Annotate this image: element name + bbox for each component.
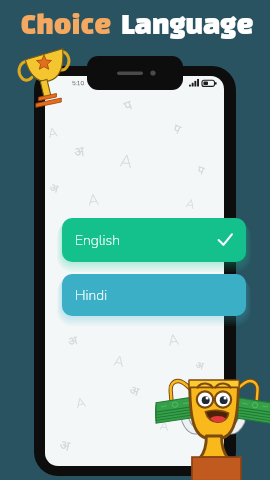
staticText: 5:10 [72,79,85,87]
staticText: प [198,391,209,408]
staticText: अ [73,141,85,161]
staticText: A [46,123,60,143]
staticText: A [112,351,126,372]
staticText: प [121,95,135,115]
staticText: अ [58,435,72,455]
staticText: Choice [21,8,112,40]
staticText: A [184,195,197,213]
button[interactable]: Hindi [62,274,246,316]
staticText: A [87,189,100,210]
staticText: अ [48,179,61,196]
staticText: अ [195,357,205,373]
staticText: प [171,119,184,137]
staticText: A [74,393,88,413]
staticText: अ [66,331,80,349]
staticText: English [75,231,120,250]
staticText: Language [121,8,254,40]
other: Selected [217,232,233,248]
staticText: A [118,149,135,174]
button[interactable]: English [62,218,246,262]
staticText: A [167,329,180,351]
staticText: अ [128,381,142,399]
staticText: A [159,417,170,435]
staticText: Hindi [75,286,108,305]
staticText: प [196,161,207,178]
